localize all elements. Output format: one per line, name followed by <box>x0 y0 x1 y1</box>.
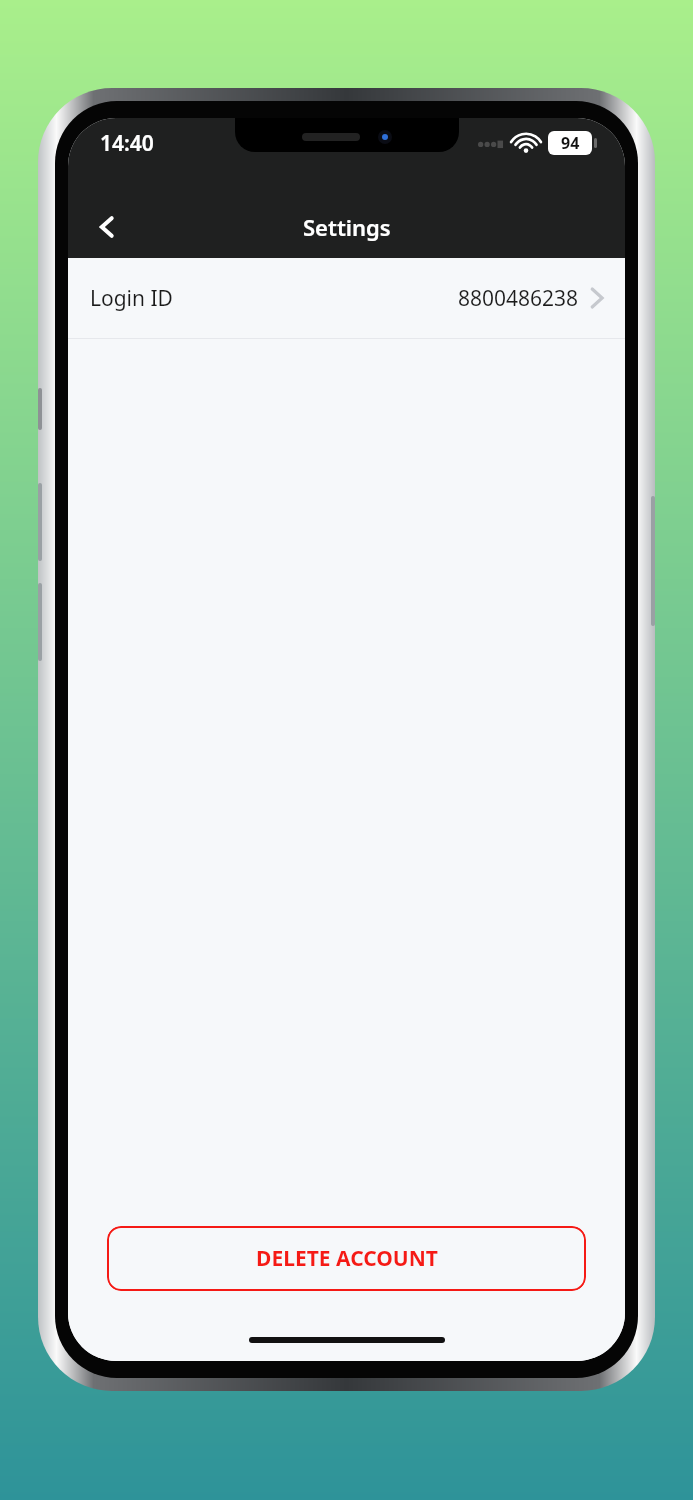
staticText: DELETE ACCOUNT <box>256 1244 438 1273</box>
staticText: Settings <box>303 212 391 242</box>
staticText: 14:40 <box>100 129 154 158</box>
staticText: Login ID <box>90 284 173 313</box>
button[interactable]: Back <box>80 200 134 254</box>
staticText: 94 <box>561 132 580 154</box>
button[interactable]: Login ID <box>68 258 625 338</box>
button[interactable]: DELETE ACCOUNT <box>107 1226 586 1291</box>
staticText: 8800486238 <box>458 284 579 313</box>
